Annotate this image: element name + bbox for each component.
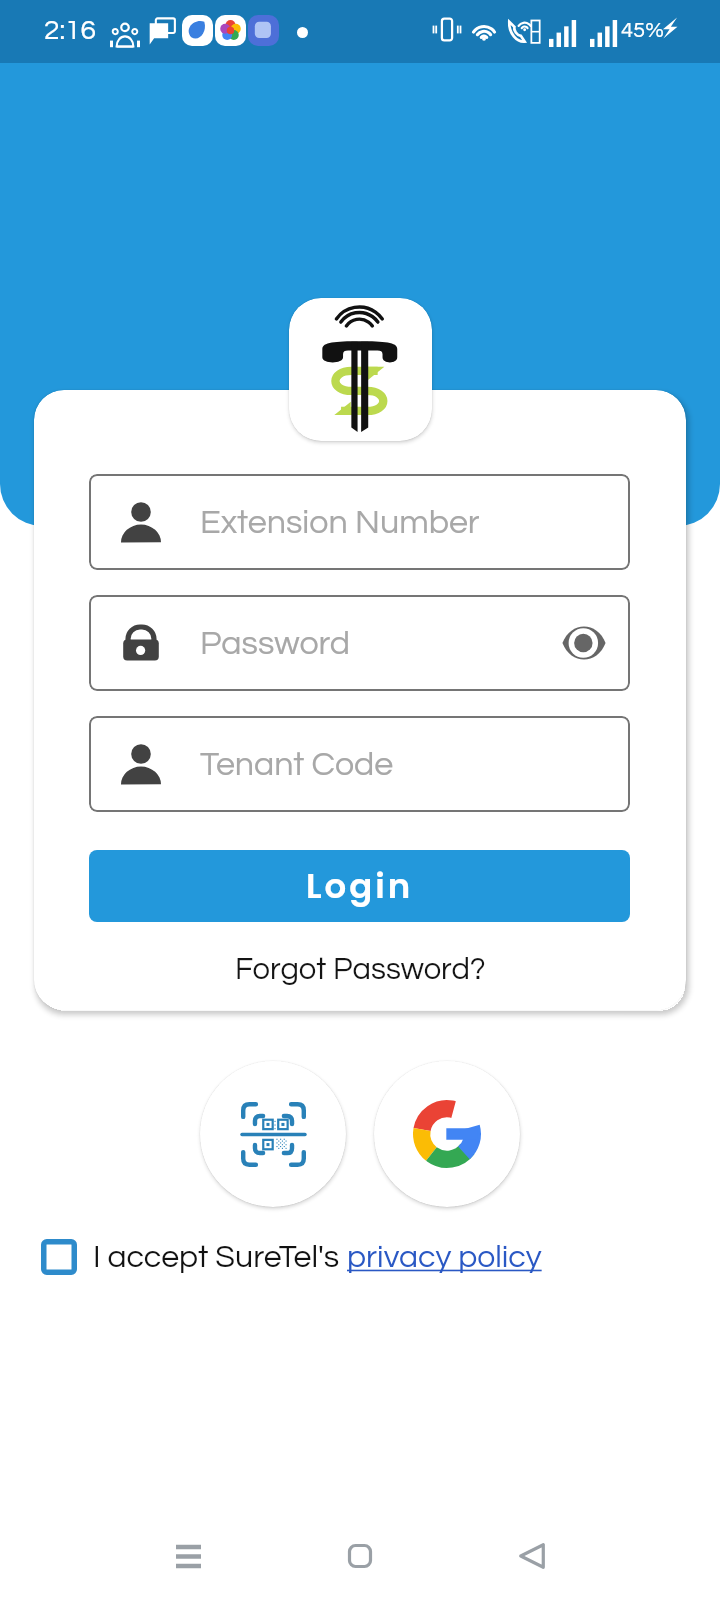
- button[interactable]: privacy policy: [347, 1241, 542, 1274]
- staticText: 2:16: [44, 16, 96, 45]
- button[interactable]: Accept privacy policy: [41, 1239, 77, 1275]
- staticText: Forgot Password?: [235, 954, 486, 986]
- button[interactable]: Recent apps: [156, 1524, 220, 1588]
- staticText: 45%: [621, 19, 664, 42]
- button[interactable]: Tenant Code: [89, 716, 630, 812]
- staticText: Password: [200, 626, 351, 661]
- button[interactable]: Scan QR code: [200, 1061, 346, 1207]
- staticText: Extension Number: [200, 505, 480, 540]
- button[interactable]: Login: [89, 850, 630, 922]
- button[interactable]: Show password: [560, 619, 608, 667]
- staticText: Login: [306, 862, 414, 910]
- button[interactable]: Forgot Password?: [229, 948, 492, 992]
- button[interactable]: Home: [328, 1524, 392, 1588]
- button[interactable]: Back: [500, 1524, 564, 1588]
- staticText: privacy policy: [347, 1241, 542, 1274]
- button[interactable]: Password: [89, 595, 630, 691]
- staticText: I accept SureTel's: [93, 1241, 347, 1274]
- button[interactable]: Extension Number: [89, 474, 630, 570]
- button[interactable]: Sign in with Google: [374, 1061, 520, 1207]
- staticText: Tenant Code: [200, 747, 394, 782]
